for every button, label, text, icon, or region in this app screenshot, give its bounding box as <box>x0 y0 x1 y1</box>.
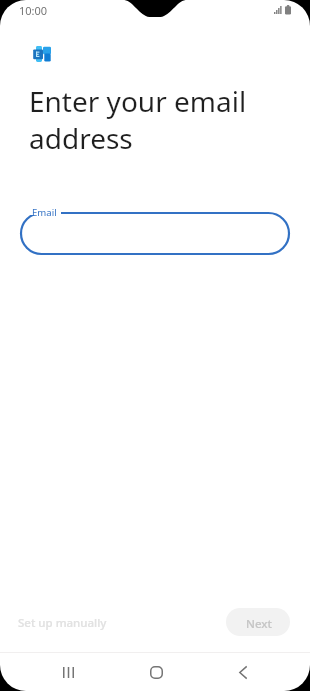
staticText: Enter your email address <box>29 82 247 157</box>
button[interactable]: Set up manually <box>10 610 115 636</box>
button[interactable]: Back <box>216 653 269 691</box>
staticText: 10:00 <box>19 3 48 18</box>
button[interactable]: Next <box>226 608 290 636</box>
button[interactable]: Home <box>130 653 182 691</box>
button[interactable]: Recent apps <box>42 653 95 691</box>
staticText: Next <box>246 616 272 632</box>
button[interactable]: Email input <box>20 212 290 255</box>
staticText: Email <box>32 206 57 219</box>
staticText: Set up manually <box>18 615 107 631</box>
